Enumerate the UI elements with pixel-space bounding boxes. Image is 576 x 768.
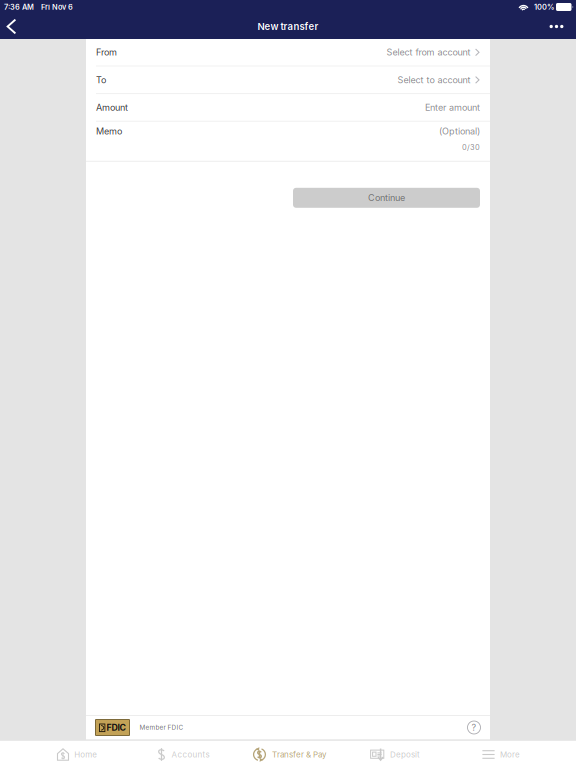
button[interactable]: Back xyxy=(0,14,23,39)
staticText: From xyxy=(96,47,117,58)
button[interactable]: Home xyxy=(57,741,97,767)
staticText: Enter amount xyxy=(425,102,480,113)
staticText: More xyxy=(500,750,520,759)
staticText: To xyxy=(96,74,106,85)
button[interactable]: To xyxy=(86,67,490,93)
button[interactable]: More xyxy=(482,741,520,767)
staticText: Accounts xyxy=(171,750,209,759)
staticText: ? xyxy=(471,722,476,733)
staticText: Member FDIC xyxy=(139,724,183,731)
staticText: 0/30 xyxy=(462,143,480,152)
button[interactable]: Continue xyxy=(293,188,480,208)
button[interactable]: Accounts xyxy=(156,741,209,767)
staticText: 7:36 AM xyxy=(4,2,34,11)
staticText: Fri Nov 6 xyxy=(41,2,73,11)
button[interactable]: Transfer & Pay xyxy=(252,741,326,767)
staticText: Deposit xyxy=(390,750,420,759)
staticText: FDIC xyxy=(106,722,126,733)
staticText: Continue xyxy=(368,192,405,203)
staticText: New transfer xyxy=(257,21,318,32)
staticText: Memo xyxy=(96,126,122,137)
staticText: (Optional) xyxy=(439,126,480,137)
staticText: 100% xyxy=(534,2,554,11)
button[interactable]: From xyxy=(86,39,490,66)
staticText: Select to account xyxy=(398,74,471,85)
button[interactable]: Memo xyxy=(86,122,490,161)
staticText: Transfer & Pay xyxy=(272,750,326,759)
staticText: Home xyxy=(74,750,97,759)
button[interactable]: Deposit xyxy=(370,741,420,767)
staticText: Select from account xyxy=(387,47,471,58)
staticText: Amount xyxy=(96,102,128,113)
button[interactable]: Help xyxy=(467,721,480,734)
button[interactable]: More options xyxy=(543,14,570,39)
button[interactable]: Amount xyxy=(86,94,490,121)
